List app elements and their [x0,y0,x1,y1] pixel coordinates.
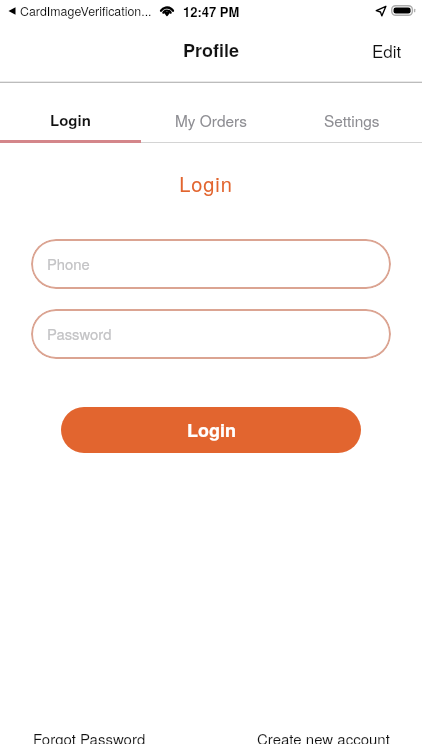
staticText: Phone [47,253,90,274]
staticText: Profile [0,37,422,63]
button[interactable]: Create new account [245,724,422,748]
staticText: Settings [324,109,380,131]
staticText: Edit [372,38,402,62]
staticText: Password [47,323,112,344]
staticText: Forgot Password [33,728,146,744]
staticText: My Orders [175,109,247,131]
staticText: CardImageVerification... [20,2,152,20]
button[interactable]: Phone [31,239,391,289]
button[interactable]: Edit [354,30,422,70]
staticText: 12:47 PM [183,2,240,21]
button[interactable]: Login [0,83,140,140]
button[interactable]: Settings [281,83,422,140]
staticText: Login [187,417,236,443]
button[interactable]: Forgot Password [0,724,158,748]
button[interactable]: Login [61,407,361,453]
staticText: Login [50,109,91,130]
staticText: Create new account [257,728,390,744]
staticText: Login [0,169,417,198]
button[interactable]: Password [31,309,391,359]
button[interactable]: My Orders [140,83,281,140]
